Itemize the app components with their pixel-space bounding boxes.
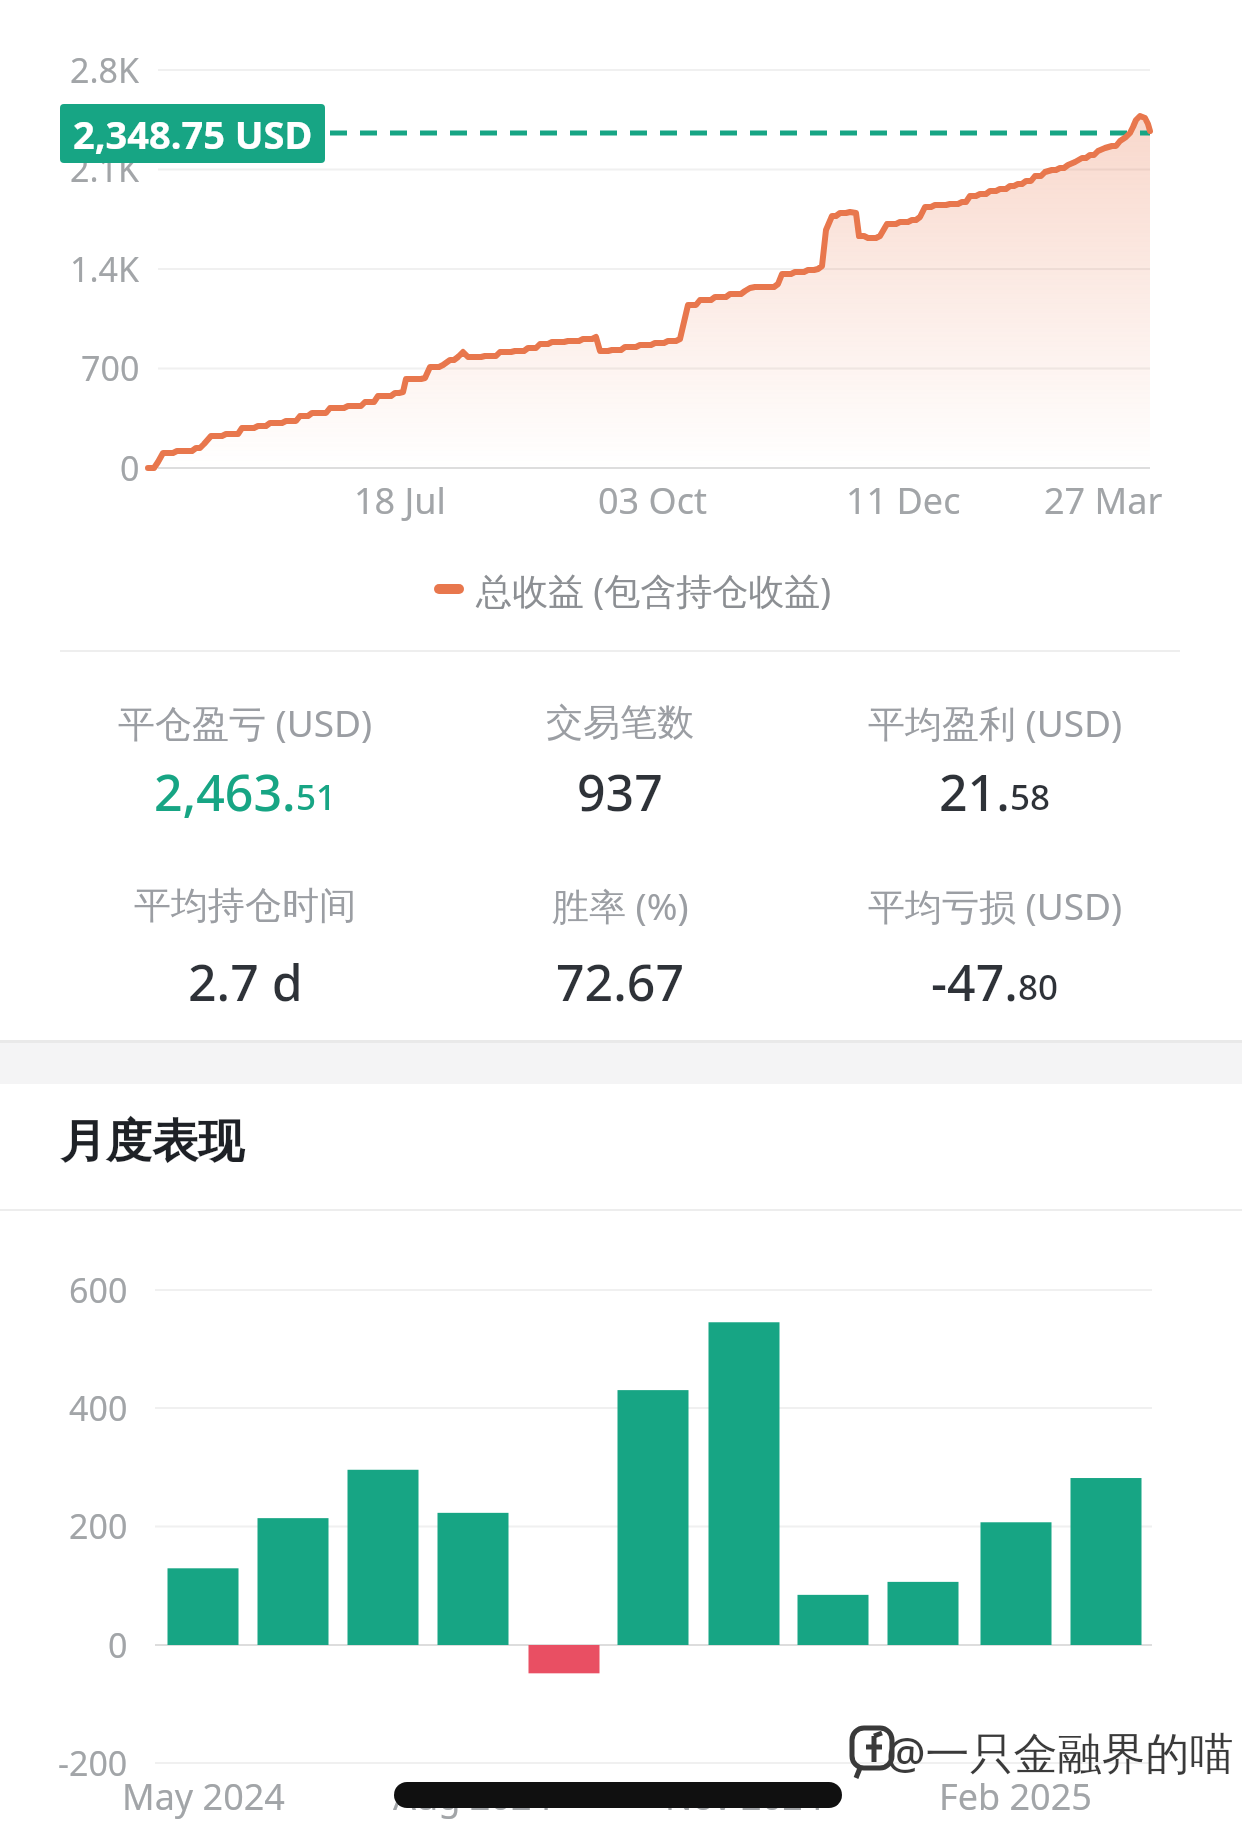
staticText: May 2024 bbox=[122, 1772, 285, 1821]
staticText: 交易笔数 bbox=[546, 699, 694, 746]
staticText: Feb 2025 bbox=[939, 1772, 1092, 1821]
staticText: -47. bbox=[931, 948, 1018, 1016]
staticText: 平仓盈亏 (USD) bbox=[118, 697, 373, 748]
staticText: 937 bbox=[577, 758, 663, 826]
staticText: 27 Mar bbox=[1044, 476, 1163, 525]
staticText: 2,348.75 USD bbox=[73, 108, 313, 160]
staticText: 1.4K bbox=[70, 246, 140, 292]
button[interactable]: 2,348.75 USD bbox=[60, 104, 325, 163]
staticText: 0 bbox=[108, 1622, 128, 1668]
staticText: @一只金融界的喵 bbox=[886, 1722, 1234, 1782]
staticText: 03 Oct bbox=[598, 476, 707, 525]
staticText: 2.7 d bbox=[188, 948, 303, 1016]
staticText: 72.67 bbox=[556, 948, 684, 1016]
staticText: 58 bbox=[1010, 773, 1051, 821]
staticText: 700 bbox=[81, 345, 140, 391]
staticText: -200 bbox=[58, 1740, 128, 1786]
staticText: 600 bbox=[69, 1267, 128, 1313]
staticText: 胜率 (%) bbox=[552, 880, 689, 931]
staticText: 80 bbox=[1018, 963, 1059, 1011]
staticText: Aug 2024 bbox=[393, 1772, 553, 1821]
staticText: 2.8K bbox=[70, 47, 140, 93]
staticText: 平均盈利 (USD) bbox=[868, 697, 1123, 748]
staticText: 18 Jul bbox=[354, 476, 446, 525]
staticText: 11 Dec bbox=[846, 476, 961, 525]
staticText: 21. bbox=[939, 758, 1010, 826]
staticText: 2,463. bbox=[154, 758, 296, 826]
staticText: Nov 2024 bbox=[665, 1772, 824, 1821]
staticText: 平均亏损 (USD) bbox=[868, 880, 1123, 931]
staticText: 月度表现 bbox=[60, 1113, 244, 1171]
staticText: 2.1K bbox=[70, 146, 140, 192]
staticText: 总收益 (包含持仓收益) bbox=[476, 566, 831, 615]
staticText: 平均持仓时间 bbox=[134, 882, 356, 929]
staticText: 200 bbox=[69, 1503, 128, 1549]
staticText: 400 bbox=[69, 1385, 128, 1431]
staticText: 51 bbox=[296, 773, 337, 821]
button[interactable]: 总收益 (包含持仓收益) bbox=[476, 560, 876, 620]
staticText: 0 bbox=[120, 445, 140, 491]
